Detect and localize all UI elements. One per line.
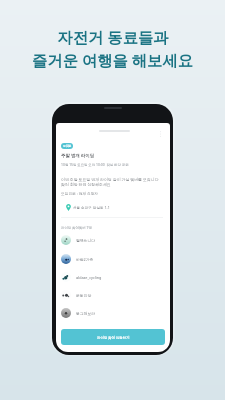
button[interactable]: 운동인앙 bbox=[61, 290, 163, 300]
button[interactable]: More options bbox=[159, 131, 162, 137]
staticText: 라이딩 참여 신청하기 bbox=[97, 335, 130, 340]
staticText: 이번 주말 토요일 번개 라이딩 같이 가실 멤버를 모집니다 bbox=[61, 177, 159, 182]
button[interactable]: 바람2가족 bbox=[61, 254, 163, 264]
staticText: 바람2가족 bbox=[76, 257, 94, 262]
staticText: 뭉그려보라 bbox=[76, 311, 95, 316]
staticText: 모집인원 : 현재 신청자 bbox=[61, 191, 99, 196]
staticText: 모집중 bbox=[63, 144, 72, 148]
staticText: 주말 벙개 라이딩 bbox=[61, 152, 95, 158]
staticText: 참여 희망 하면 신청해주세요 bbox=[61, 182, 111, 187]
staticText: 즐거운 여행을 해보세요 bbox=[32, 50, 193, 71]
staticText: 자전거 동료들과 bbox=[57, 27, 169, 48]
staticText: 운동인앙 bbox=[76, 293, 92, 298]
staticText: ablaze_cycling bbox=[76, 275, 102, 280]
button[interactable]: ablaze_cycling bbox=[61, 272, 163, 282]
button[interactable]: 헬멧쓰니다 bbox=[61, 235, 163, 245]
staticText: 라이딩 참여멤버 7명 bbox=[61, 225, 92, 230]
button[interactable]: 뭉그려보라 bbox=[61, 308, 163, 318]
staticText: 서울 송파구 잠실동 1-1 bbox=[73, 205, 110, 210]
staticText: 헬멧쓰니다 bbox=[76, 238, 95, 243]
button[interactable]: 모집중 bbox=[61, 143, 73, 149]
button[interactable]: 라이딩 참여 신청하기 bbox=[61, 329, 165, 345]
staticText: 10월 15일 토요일 오전 10:00 잠실 한강 공원 bbox=[61, 162, 129, 167]
